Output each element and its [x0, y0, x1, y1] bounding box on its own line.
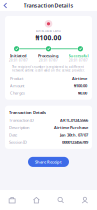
staticText: Transaction ID	[9, 118, 34, 123]
staticText: ₦0.00	[78, 90, 87, 96]
staticText: ARTL-0124-5566	[60, 118, 88, 123]
staticText: Transaction Details	[9, 110, 46, 115]
button[interactable]: Cards	[0, 190, 24, 210]
staticText: The recipient's number is registered to …	[12, 65, 85, 72]
button[interactable]: Back	[0, 0, 11, 11]
staticText: Date	[9, 132, 17, 137]
button[interactable]: Search	[48, 190, 73, 210]
staticText: 20:01 07/07	[9, 59, 28, 62]
staticText: Jan 30th, 07/07	[60, 132, 88, 137]
staticText: 20:01 07/07	[69, 59, 88, 62]
staticText: Share Receipt	[35, 159, 62, 164]
staticText: Charges	[10, 90, 25, 96]
staticText: AIRTEL DATA CARD	[36, 29, 61, 33]
staticText: Transaction Details	[23, 2, 73, 9]
staticText: ₦100.00	[35, 33, 61, 42]
button[interactable]: Home	[24, 190, 48, 210]
staticText: Amount	[10, 83, 24, 88]
staticText: Processing	[38, 53, 59, 58]
staticText: Airtime	[72, 76, 87, 81]
staticText: Description	[9, 125, 29, 130]
staticText: 0000123456789	[62, 139, 88, 145]
button[interactable]: Profile	[73, 190, 97, 210]
button[interactable]: Share Receipt	[28, 157, 69, 167]
staticText: Session ID	[9, 139, 27, 145]
staticText: ₦100.00	[74, 83, 87, 88]
staticText: Successful	[68, 53, 88, 58]
staticText: Airtime Purchase	[54, 125, 88, 130]
staticText: Initiated	[10, 53, 27, 58]
staticText: Product	[10, 76, 23, 81]
staticText: 20:01 07/07	[39, 59, 58, 62]
